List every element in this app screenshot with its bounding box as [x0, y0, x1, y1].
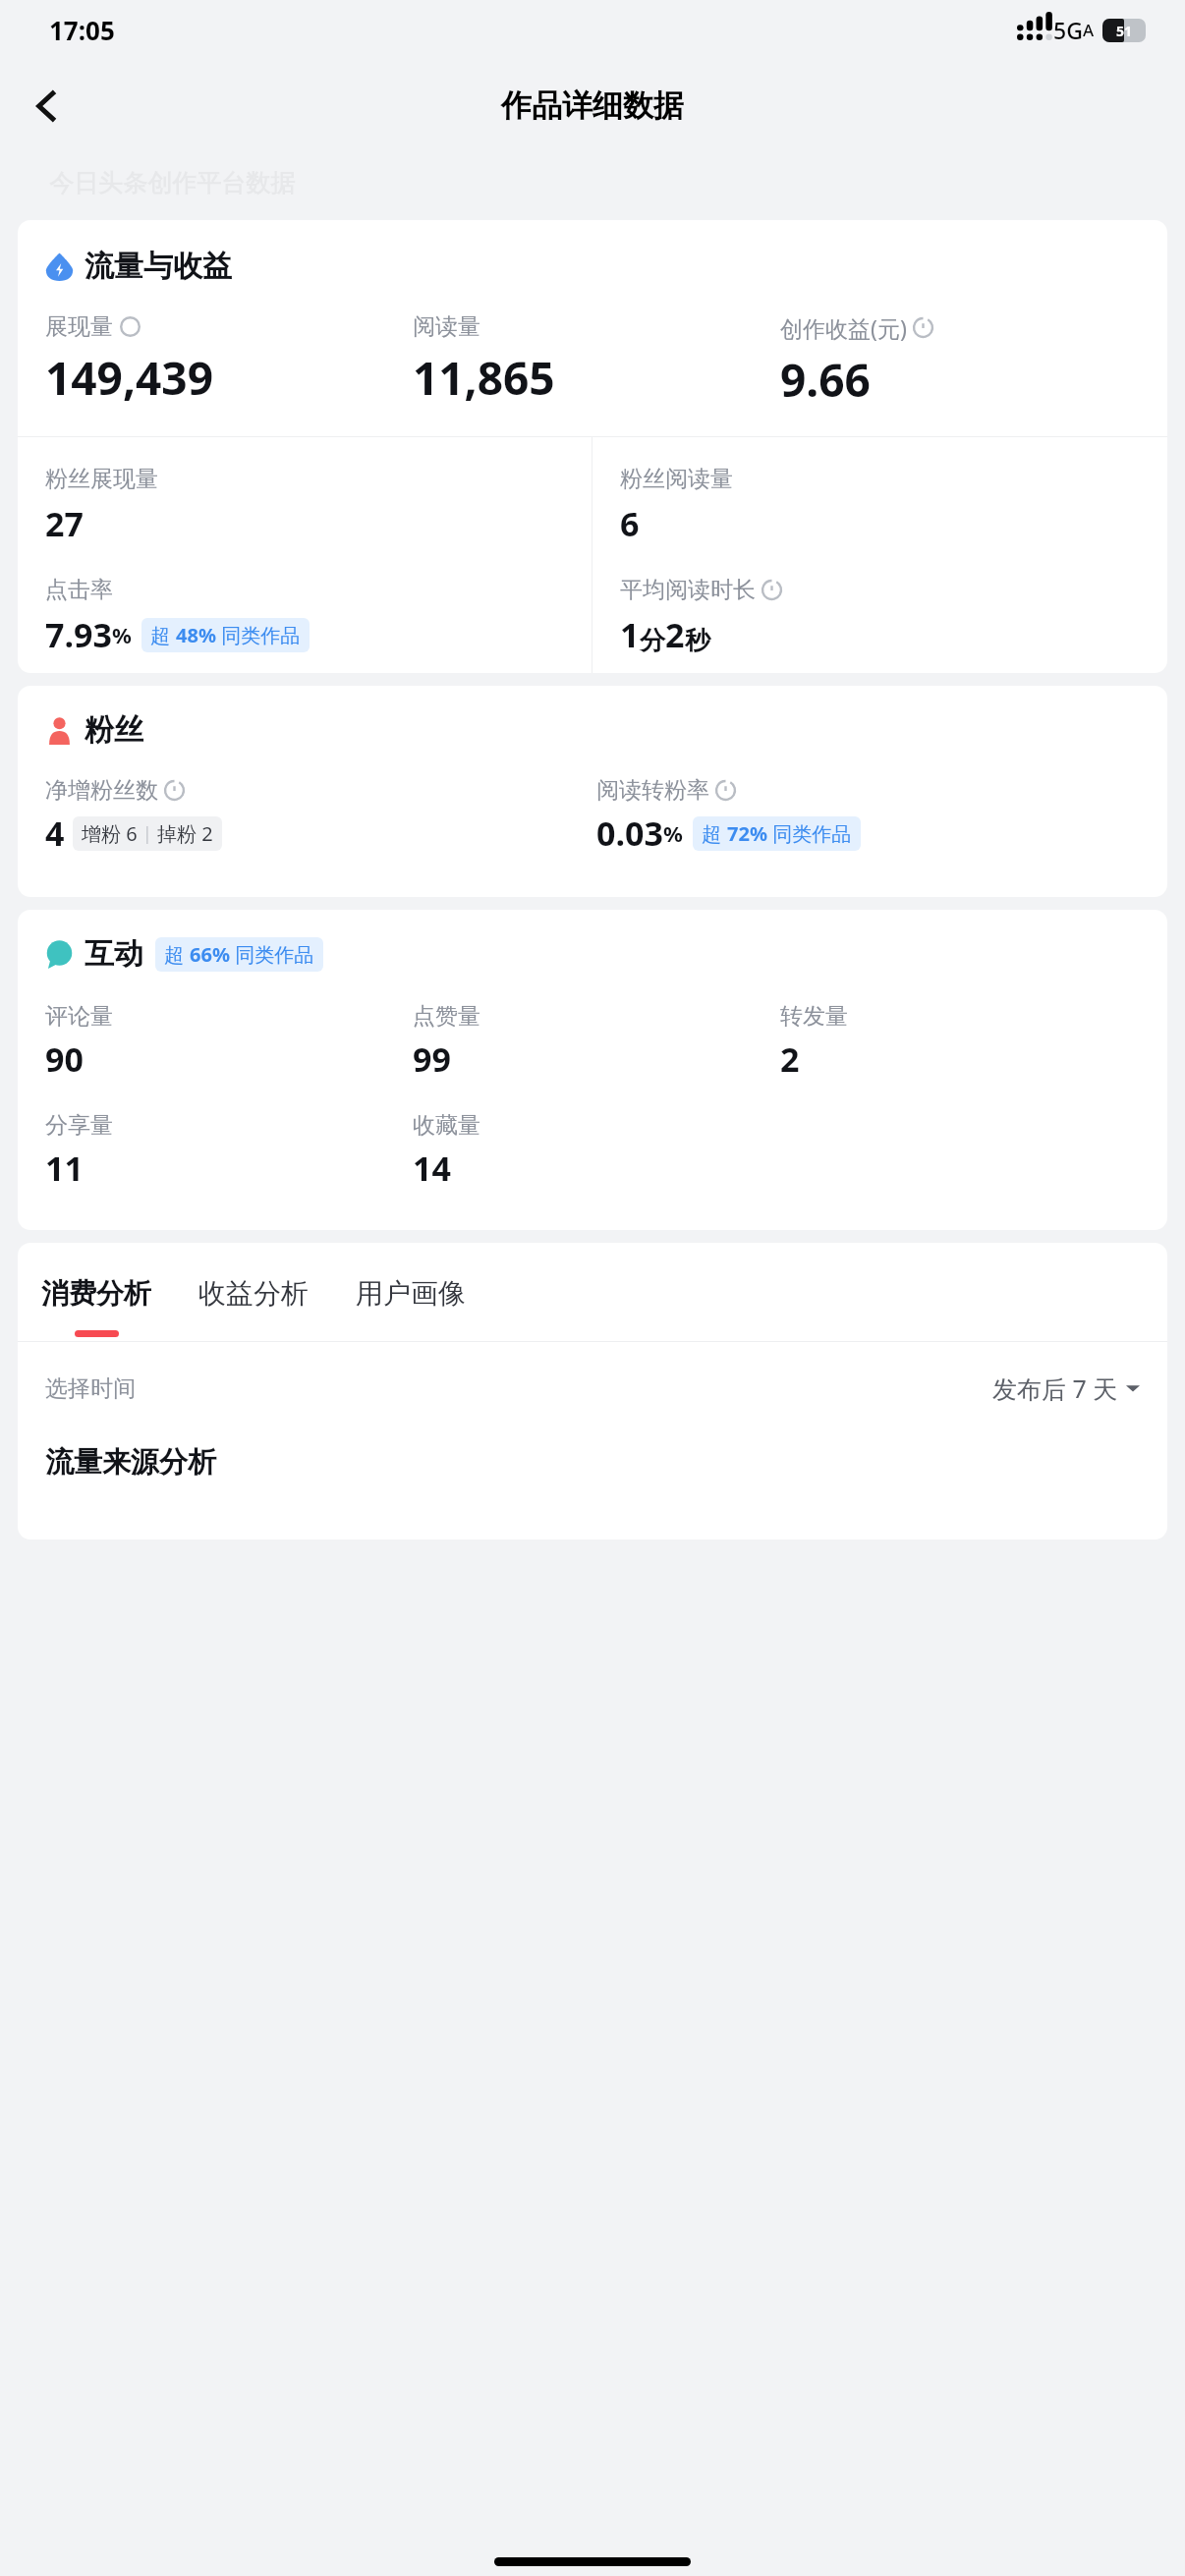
staticText: 11,865	[413, 347, 555, 409]
button[interactable]: 收益分析	[175, 1272, 332, 1341]
button[interactable]: 超	[702, 820, 852, 847]
staticText: 点击率	[45, 576, 113, 604]
staticText: 0.03	[596, 811, 663, 856]
staticText: %	[663, 818, 683, 848]
staticText: 今日头条创作平台数据	[49, 168, 295, 198]
staticText: 1	[620, 612, 640, 657]
staticText: |	[138, 821, 157, 846]
staticText: 选择时间	[45, 1374, 136, 1403]
button[interactable]: 超	[150, 622, 301, 648]
staticText: 17:05	[49, 13, 115, 47]
staticText: 发布后 7 天	[992, 1372, 1118, 1405]
staticText: 阅读量	[413, 312, 480, 341]
staticText: 4	[45, 811, 65, 856]
staticText: 48%	[176, 622, 216, 648]
staticText: 增粉 6	[82, 820, 138, 847]
staticText: 粉丝展现量	[45, 465, 158, 493]
staticText: 评论量	[45, 1002, 113, 1031]
staticText: 收藏量	[413, 1111, 480, 1140]
button[interactable]: 用户画像	[332, 1272, 489, 1341]
staticText: 收益分析	[198, 1276, 309, 1311]
button[interactable]: 发布后 7 天	[992, 1372, 1140, 1405]
staticText: 72%	[727, 820, 767, 847]
staticText: 90	[45, 1036, 84, 1082]
staticText: 2	[665, 612, 685, 657]
staticText: 平均阅读时长	[620, 576, 756, 604]
staticText: 6	[620, 501, 640, 546]
staticText: 分享量	[45, 1111, 113, 1140]
staticText: 消费分析	[41, 1276, 151, 1311]
staticText: 66%	[190, 941, 230, 968]
staticText: 流量与收益	[85, 248, 232, 285]
staticText: 149,439	[45, 347, 213, 409]
staticText: 转发量	[780, 1002, 848, 1031]
button[interactable]: Back	[20, 79, 75, 134]
staticText: A	[1083, 19, 1095, 41]
staticText: 99	[413, 1036, 451, 1082]
staticText: 27	[45, 501, 84, 546]
staticText: 掉粉 2	[157, 820, 213, 847]
staticText: 51	[1116, 22, 1133, 40]
staticText: 粉丝阅读量	[620, 465, 733, 493]
staticText: 5G	[1053, 15, 1083, 45]
staticText: 超	[150, 622, 176, 648]
staticText: 秒	[685, 625, 710, 657]
staticText: 分	[640, 625, 665, 657]
button[interactable]: 消费分析	[18, 1272, 175, 1341]
button[interactable]: 增粉 6	[82, 820, 213, 847]
staticText: 点赞量	[413, 1002, 480, 1031]
staticText: 互动	[85, 935, 143, 973]
staticText: 2	[780, 1036, 800, 1082]
staticText: 粉丝	[85, 711, 143, 749]
button[interactable]: 超	[164, 941, 314, 968]
staticText: 11	[45, 1146, 84, 1191]
staticText: 同类作品	[767, 820, 852, 847]
staticText: 展现量	[45, 312, 113, 341]
staticText: 阅读转粉率	[596, 776, 709, 805]
staticText: 超	[164, 941, 190, 968]
staticText: 作品详细数据	[501, 86, 684, 125]
staticText: 用户画像	[356, 1276, 466, 1311]
staticText: 14	[413, 1146, 451, 1191]
staticText: %	[112, 620, 132, 649]
staticText: 超	[702, 820, 727, 847]
staticText: 创作收益(元)	[780, 312, 907, 343]
staticText: 7.93	[45, 612, 112, 657]
staticText: 净增粉丝数	[45, 776, 158, 805]
staticText: 流量来源分析	[45, 1444, 216, 1481]
staticText: 同类作品	[216, 622, 301, 648]
staticText: 同类作品	[230, 941, 314, 968]
staticText: 9.66	[780, 349, 871, 411]
